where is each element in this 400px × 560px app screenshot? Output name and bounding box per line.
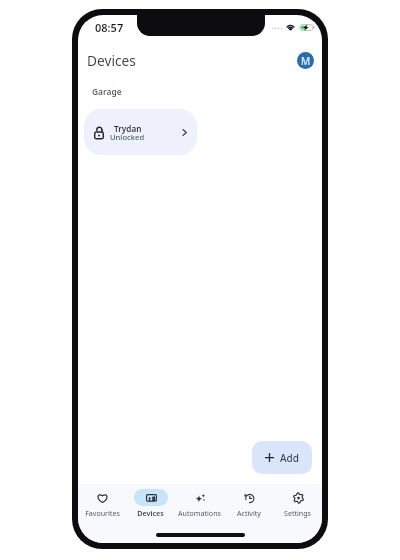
staticText: M <box>301 54 311 68</box>
staticText: Devices <box>87 51 136 70</box>
staticText: Settings <box>284 508 311 518</box>
button[interactable]: Settings <box>273 484 322 518</box>
button[interactable]: Account <box>297 52 314 69</box>
button[interactable]: Trydan <box>84 109 197 155</box>
staticText: Unlocked <box>110 132 145 142</box>
button[interactable]: Favourites <box>78 484 126 518</box>
button[interactable]: Automations <box>175 484 224 518</box>
button[interactable]: Add <box>252 441 312 474</box>
staticText: Add <box>280 451 299 465</box>
staticText: Activity <box>237 508 261 518</box>
staticText: Garage <box>92 86 122 97</box>
button[interactable]: Devices <box>126 484 175 518</box>
staticText: Automations <box>178 508 221 518</box>
staticText: Trydan <box>114 123 142 134</box>
staticText: 08:57 <box>95 20 124 35</box>
staticText: Favourites <box>85 508 120 518</box>
button[interactable]: Activity <box>224 484 273 518</box>
staticText: Devices <box>137 508 164 518</box>
